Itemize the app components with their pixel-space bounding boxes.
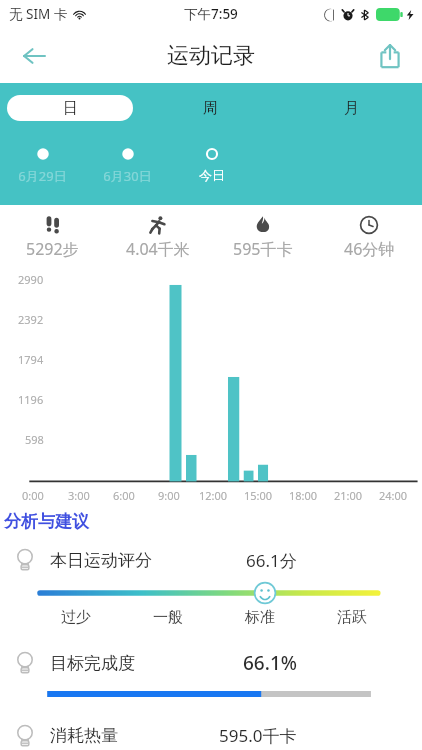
staticText: 66.1分: [246, 549, 297, 572]
staticText: 目标完成度: [50, 653, 135, 674]
staticText: 本日运动评分: [50, 550, 152, 571]
staticText: 595.0千卡: [219, 724, 297, 747]
staticText: 运动记录: [167, 42, 255, 70]
button[interactable]: 月: [288, 95, 415, 121]
staticText: 过少: [61, 608, 91, 627]
staticText: 15:00: [244, 488, 273, 503]
staticText: 6:00: [113, 488, 135, 503]
staticText: 活跃: [337, 608, 367, 627]
staticText: 日: [63, 99, 78, 118]
staticText: 6月29日: [18, 167, 67, 185]
staticText: 595千卡: [233, 238, 293, 260]
staticText: 2392: [18, 312, 44, 327]
staticText: 18:00: [289, 488, 318, 503]
staticText: 6月30日: [103, 167, 152, 185]
button[interactable]: 消耗热量: [0, 721, 422, 750]
staticText: 12:00: [199, 488, 228, 503]
button[interactable]: 6月29日: [0, 147, 85, 185]
staticText: 4.04千米: [126, 238, 190, 260]
staticText: 消耗热量: [50, 725, 118, 746]
staticText: 2990: [18, 272, 44, 287]
staticText: 月: [344, 99, 359, 118]
button[interactable]: 6月30日: [85, 147, 170, 185]
button[interactable]: 日: [7, 95, 133, 121]
staticText: 下午7:59: [184, 5, 238, 23]
staticText: 1196: [18, 392, 44, 407]
staticText: 5292步: [26, 238, 79, 260]
button[interactable]: 今日: [170, 147, 254, 183]
staticText: 无 SIM 卡: [9, 5, 68, 23]
staticText: 46分钟: [344, 238, 395, 260]
staticText: 一般: [153, 608, 183, 627]
staticText: 标准: [245, 608, 275, 627]
button[interactable]: 返回: [10, 32, 58, 80]
staticText: 周: [203, 99, 218, 118]
button[interactable]: 分享: [366, 32, 414, 80]
button[interactable]: 周: [147, 95, 274, 121]
button[interactable]: 本日运动评分: [0, 540, 422, 580]
staticText: 0:00: [22, 488, 44, 503]
staticText: 21:00: [334, 488, 363, 503]
button[interactable]: 4.04千米: [105, 215, 210, 260]
staticText: 598: [25, 432, 44, 447]
staticText: 9:00: [158, 488, 180, 503]
staticText: 24:00: [379, 488, 408, 503]
staticText: 1794: [18, 352, 44, 367]
staticText: 分析与建议: [4, 511, 89, 532]
button[interactable]: 595千卡: [210, 215, 316, 260]
staticText: 3:00: [68, 488, 90, 503]
button[interactable]: 46分钟: [316, 215, 422, 260]
button[interactable]: 目标完成度: [0, 643, 422, 683]
button[interactable]: 5292步: [0, 215, 105, 260]
staticText: 今日: [199, 167, 225, 183]
staticText: 66.1%: [243, 650, 297, 676]
